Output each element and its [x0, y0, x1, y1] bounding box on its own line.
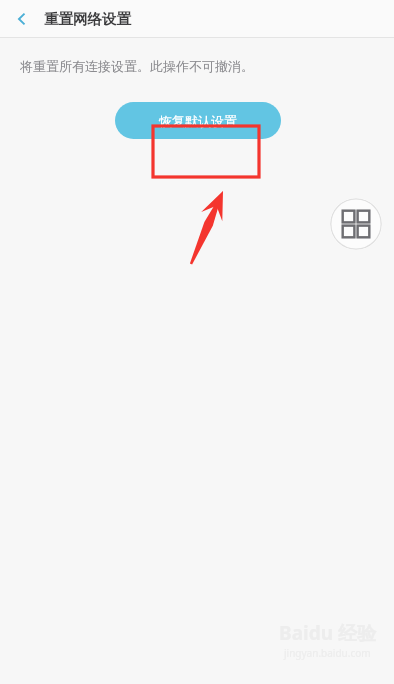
staticText: 将重置所有连接设置。此操作不可撤消。	[20, 58, 254, 74]
staticText: 恢复默认设置	[159, 113, 237, 129]
staticText: Baidu 经验	[279, 620, 376, 646]
button[interactable]: 恢复默认设置	[115, 102, 281, 139]
staticText: jingyan.baidu.com	[284, 646, 371, 660]
button[interactable]: Back	[0, 0, 44, 38]
staticText: 重置网络设置	[44, 10, 131, 28]
button[interactable]: Apps grid	[330, 198, 382, 250]
